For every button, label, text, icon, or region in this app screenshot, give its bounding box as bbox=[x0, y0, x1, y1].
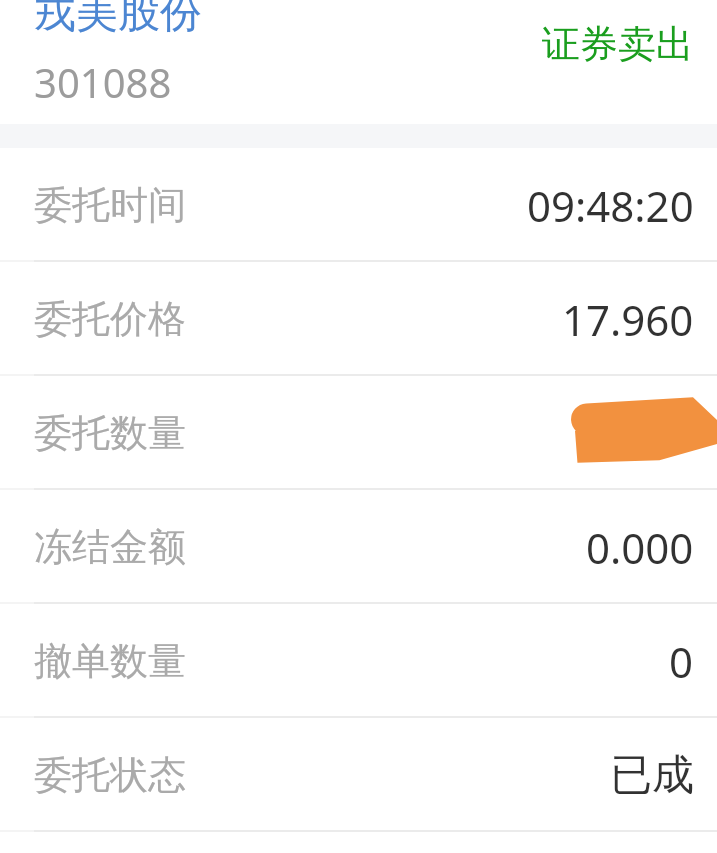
staticText: 撤单数量 bbox=[34, 637, 186, 685]
staticText: 委托数量 bbox=[34, 409, 186, 457]
staticText: 戎美股份 bbox=[34, 0, 202, 40]
button[interactable]: 委托数量 bbox=[0, 376, 717, 490]
staticText: 委托时间 bbox=[34, 181, 186, 229]
staticText: 委托状态 bbox=[34, 751, 186, 799]
staticText: 冻结金额 bbox=[34, 523, 186, 571]
staticText: 17.960 bbox=[562, 291, 694, 348]
staticText: 委托价格 bbox=[34, 295, 186, 343]
button[interactable]: 委托价格 bbox=[0, 262, 717, 376]
staticText: 09:48:20 bbox=[527, 177, 694, 234]
staticText: 301088 bbox=[34, 55, 172, 109]
staticText: 已成 bbox=[610, 749, 694, 802]
button[interactable]: 委托时间 bbox=[0, 148, 717, 262]
button[interactable]: 撤单数量 bbox=[0, 604, 717, 718]
staticText: 0 bbox=[669, 633, 694, 690]
button[interactable]: 冻结金额 bbox=[0, 490, 717, 604]
other: Redacted quantity bbox=[0, 376, 717, 490]
staticText: 证券卖出 bbox=[542, 20, 694, 68]
staticText: 0.000 bbox=[586, 519, 694, 576]
button[interactable]: 委托状态 bbox=[0, 718, 717, 832]
